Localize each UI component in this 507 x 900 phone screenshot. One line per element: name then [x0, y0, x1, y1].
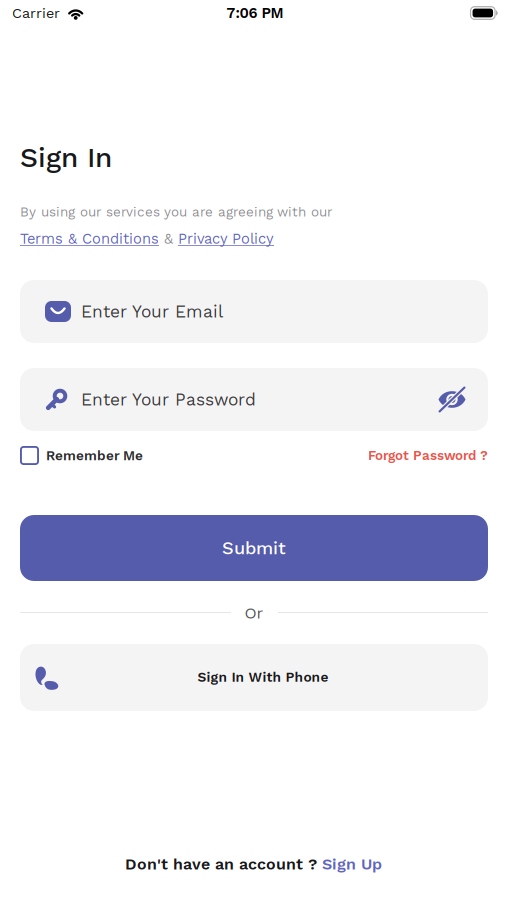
- staticText: 7:06 PM: [226, 4, 283, 22]
- button[interactable]: Privacy Policy: [178, 230, 274, 247]
- staticText: Submit: [222, 537, 286, 559]
- staticText: Or: [244, 603, 263, 623]
- button[interactable]: Submit: [20, 515, 488, 581]
- button[interactable]: Forgot Password ?: [368, 448, 488, 463]
- staticText: Don't have an account ?: [125, 855, 322, 873]
- staticText: Sign Up: [322, 855, 382, 873]
- staticText: Enter Your Email: [81, 301, 223, 322]
- staticText: Forgot Password ?: [368, 448, 488, 463]
- button[interactable]: Show password: [438, 386, 466, 413]
- button[interactable]: Remember Me: [20, 446, 143, 465]
- button[interactable]: Sign In With Phone: [20, 644, 488, 711]
- staticText: By using our services you are agreeing w…: [20, 204, 332, 220]
- button[interactable]: Enter Your Email: [20, 280, 488, 343]
- staticText: Remember Me: [46, 447, 143, 463]
- staticText: Carrier: [12, 5, 60, 21]
- staticText: Terms & Conditions: [20, 230, 159, 247]
- staticText: Sign In With Phone: [197, 669, 328, 685]
- staticText: Privacy Policy: [178, 230, 274, 247]
- staticText: &: [159, 230, 178, 247]
- button[interactable]: Sign Up: [322, 855, 382, 873]
- staticText: Enter Your Password: [81, 389, 256, 410]
- button[interactable]: Terms & Conditions: [20, 230, 159, 247]
- staticText: Sign In: [20, 141, 112, 174]
